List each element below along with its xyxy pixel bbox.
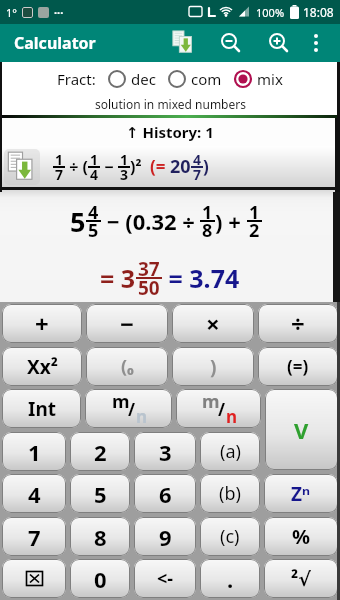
staticText: − (0.32 ÷ [101, 206, 195, 236]
staticText: ÷ [291, 307, 305, 340]
button[interactable]: (=) [258, 347, 338, 386]
button[interactable] [206, 24, 256, 62]
staticText: Int [28, 396, 56, 422]
button[interactable]: 2 [70, 432, 130, 471]
button[interactable]: + [2, 304, 82, 343]
button[interactable]: 6 [134, 474, 196, 513]
staticText: / [218, 398, 226, 421]
staticText: 1° [6, 5, 17, 20]
staticText: 50 [138, 275, 160, 301]
button[interactable]: 8 [70, 517, 130, 556]
staticText: × [206, 307, 220, 340]
button[interactable]: % [264, 517, 338, 556]
staticText: 1 [120, 150, 129, 169]
button[interactable]: Xx² [2, 347, 82, 386]
button[interactable]: ) [172, 347, 254, 386]
staticText: ··· [54, 5, 64, 20]
staticText: 4 [193, 150, 202, 169]
staticText: (b) [219, 481, 241, 506]
button[interactable]: 3 [134, 432, 196, 471]
staticText: . [227, 564, 234, 594]
staticText: 5 [88, 218, 99, 243]
button[interactable]: − [86, 304, 168, 343]
staticText: − [100, 156, 118, 178]
staticText: 100% [256, 5, 285, 20]
button[interactable]: (a) [200, 432, 260, 471]
button[interactable]: × [172, 304, 254, 343]
staticText: 18:08 [303, 4, 334, 20]
staticText: ↑ History: 1 [126, 122, 214, 142]
staticText: (= [150, 155, 170, 178]
staticText: ) [203, 155, 209, 178]
button[interactable] [2, 559, 66, 598]
staticText: 4 [88, 200, 99, 225]
button[interactable]: com [168, 69, 222, 89]
button[interactable]: (₀ [86, 347, 168, 386]
button[interactable]: . [200, 559, 260, 598]
staticText: Fract: [57, 69, 96, 89]
staticText: (₀ [121, 354, 134, 379]
button[interactable]: mix [234, 69, 283, 89]
button[interactable]: (c) [200, 517, 260, 556]
staticText: 1 [55, 150, 64, 169]
staticText: n [136, 405, 148, 428]
staticText: 5 [70, 203, 86, 240]
staticText: = 3 [100, 261, 136, 295]
staticText: 1 [202, 200, 213, 225]
button[interactable]: 1 [0, 146, 340, 187]
button[interactable]: dec [108, 69, 156, 89]
staticText: com [191, 69, 222, 89]
button[interactable]: V [265, 389, 338, 470]
staticText: Zⁿ [291, 481, 311, 507]
staticText: 6 [159, 479, 172, 509]
staticText: ²√ [291, 566, 311, 592]
button[interactable]: ÷ [258, 304, 338, 343]
button[interactable]: 9 [134, 517, 196, 556]
staticText: − [120, 307, 134, 340]
button[interactable]: Int [2, 389, 81, 428]
staticText: Calculator [14, 32, 96, 54]
staticText: m [112, 389, 130, 414]
staticText: 37 [138, 256, 160, 282]
staticText: (a) [220, 439, 241, 464]
staticText: 5 [94, 479, 107, 509]
staticText: solution in mixed numbers [95, 96, 246, 112]
staticText: 7 [55, 165, 64, 184]
button[interactable]: (b) [200, 474, 260, 513]
staticText: ÷ ( [65, 156, 88, 178]
staticText: 9 [159, 522, 172, 552]
staticText: + [35, 307, 49, 340]
staticText: 2 [249, 218, 260, 243]
button[interactable]: 5 [70, 474, 130, 513]
staticText: / [128, 398, 136, 421]
staticText: V [294, 415, 309, 445]
button[interactable] [162, 24, 206, 62]
staticText: = 3.74 [162, 261, 240, 295]
staticText: 4 [90, 165, 99, 184]
button[interactable]: m [176, 389, 261, 428]
button[interactable] [256, 24, 301, 62]
button[interactable] [301, 24, 331, 62]
button[interactable]: 1 [2, 432, 66, 471]
staticText: 3 [159, 437, 172, 467]
button[interactable]: 4 [2, 474, 66, 513]
button[interactable]: <- [134, 559, 196, 598]
staticText: % [292, 523, 311, 550]
staticText: m [202, 389, 220, 414]
button[interactable]: m [85, 389, 172, 428]
button[interactable]: ²√ [264, 559, 338, 598]
staticText: 0 [94, 564, 107, 594]
staticText: 8 [94, 522, 107, 552]
staticText: (=) [287, 355, 309, 378]
staticText: ) [210, 354, 217, 380]
button[interactable]: 0 [70, 559, 130, 598]
staticText: mix [257, 69, 283, 89]
button[interactable]: 7 [2, 517, 66, 556]
staticText: 20 [170, 154, 191, 179]
staticText: 3 [120, 165, 129, 184]
staticText: 4 [28, 479, 41, 509]
staticText: 1 [249, 200, 260, 225]
button[interactable]: Zⁿ [264, 474, 338, 513]
staticText: n [226, 405, 238, 428]
staticText: 1 [90, 150, 99, 169]
